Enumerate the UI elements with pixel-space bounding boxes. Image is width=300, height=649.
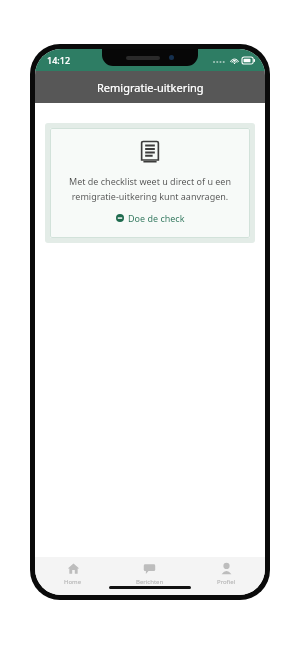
staticText: Home xyxy=(64,578,82,586)
staticText: Berichten xyxy=(136,578,164,586)
staticText: Doe de check xyxy=(128,212,185,224)
button[interactable]: Profiel xyxy=(188,557,265,595)
staticText: 14:12 xyxy=(47,54,71,66)
button[interactable]: Home xyxy=(35,557,111,595)
staticText: Met de checklist weet u direct of u een … xyxy=(60,175,240,202)
button[interactable]: Berichten xyxy=(111,557,188,595)
staticText: Remigratie-uitkering xyxy=(97,80,204,95)
button[interactable]: Doe de check xyxy=(114,210,187,226)
staticText: Profiel xyxy=(217,578,236,586)
